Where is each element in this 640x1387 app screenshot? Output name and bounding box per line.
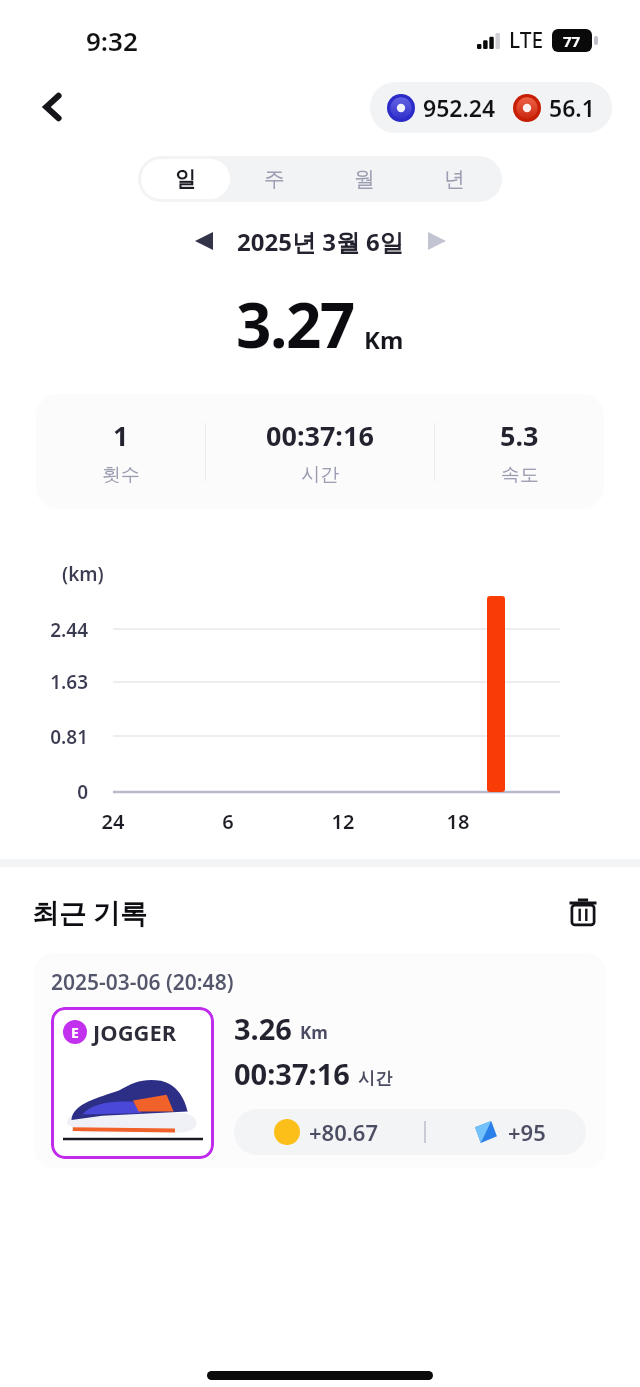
staticText: 2025-03-06 (20:48) <box>51 968 234 997</box>
staticText: 952.24 <box>423 92 496 123</box>
button[interactable]: Delete <box>558 887 608 937</box>
staticText: 0 <box>0 779 88 805</box>
button[interactable]: 2025-03-06 (20:48) <box>34 953 606 1168</box>
staticText: 5.3 <box>500 417 539 454</box>
staticText: +95 <box>508 1117 546 1147</box>
button[interactable]: 일 <box>141 159 230 199</box>
button[interactable]: 952.24 <box>370 82 612 133</box>
staticText: 00:37:16 <box>266 417 374 454</box>
staticText: 2025년 3월 6일 <box>237 225 404 258</box>
staticText: +80.67 <box>309 1117 378 1147</box>
button[interactable]: +80.67 <box>234 1109 586 1155</box>
staticText: 2.44 <box>0 617 88 643</box>
staticText: 월 <box>354 166 375 192</box>
staticText: 6 <box>198 808 258 835</box>
staticText: 횟수 <box>102 463 140 487</box>
staticText: Km <box>300 1021 328 1044</box>
button[interactable]: Previous day <box>183 220 225 262</box>
staticText: 12 <box>313 808 373 835</box>
staticText: 시간 <box>358 1068 392 1089</box>
staticText: 00:37:16 <box>234 1054 350 1093</box>
button[interactable]: 1 <box>36 394 604 509</box>
staticText: Km <box>364 323 404 356</box>
staticText: 최근 기록 <box>32 894 148 931</box>
staticText: JOGGER <box>93 1017 177 1047</box>
staticText: 1.63 <box>0 669 88 695</box>
staticText: 년 <box>444 166 465 192</box>
button[interactable]: Back <box>26 80 80 134</box>
staticText: 3.27 <box>236 282 354 366</box>
staticText: LTE <box>509 26 544 55</box>
staticText: 3.26 <box>234 1009 292 1048</box>
staticText: 9:32 <box>86 23 138 58</box>
staticText: 일 <box>175 166 196 192</box>
staticText: 24 <box>83 808 143 835</box>
button[interactable]: 월 <box>319 159 409 199</box>
staticText: 주 <box>264 166 285 192</box>
button[interactable]: 주 <box>230 159 319 199</box>
staticText: 속도 <box>501 463 539 487</box>
staticText: 시간 <box>301 463 339 487</box>
staticText: 56.1 <box>549 92 595 123</box>
staticText: 1 <box>113 417 129 454</box>
staticText: 18 <box>428 808 488 835</box>
button[interactable]: Next day <box>416 220 458 262</box>
staticText: 77 <box>563 31 581 51</box>
button[interactable]: 년 <box>409 159 499 199</box>
staticText: (km) <box>62 561 104 587</box>
staticText: 0.81 <box>0 724 88 750</box>
staticText: E <box>71 1023 79 1042</box>
